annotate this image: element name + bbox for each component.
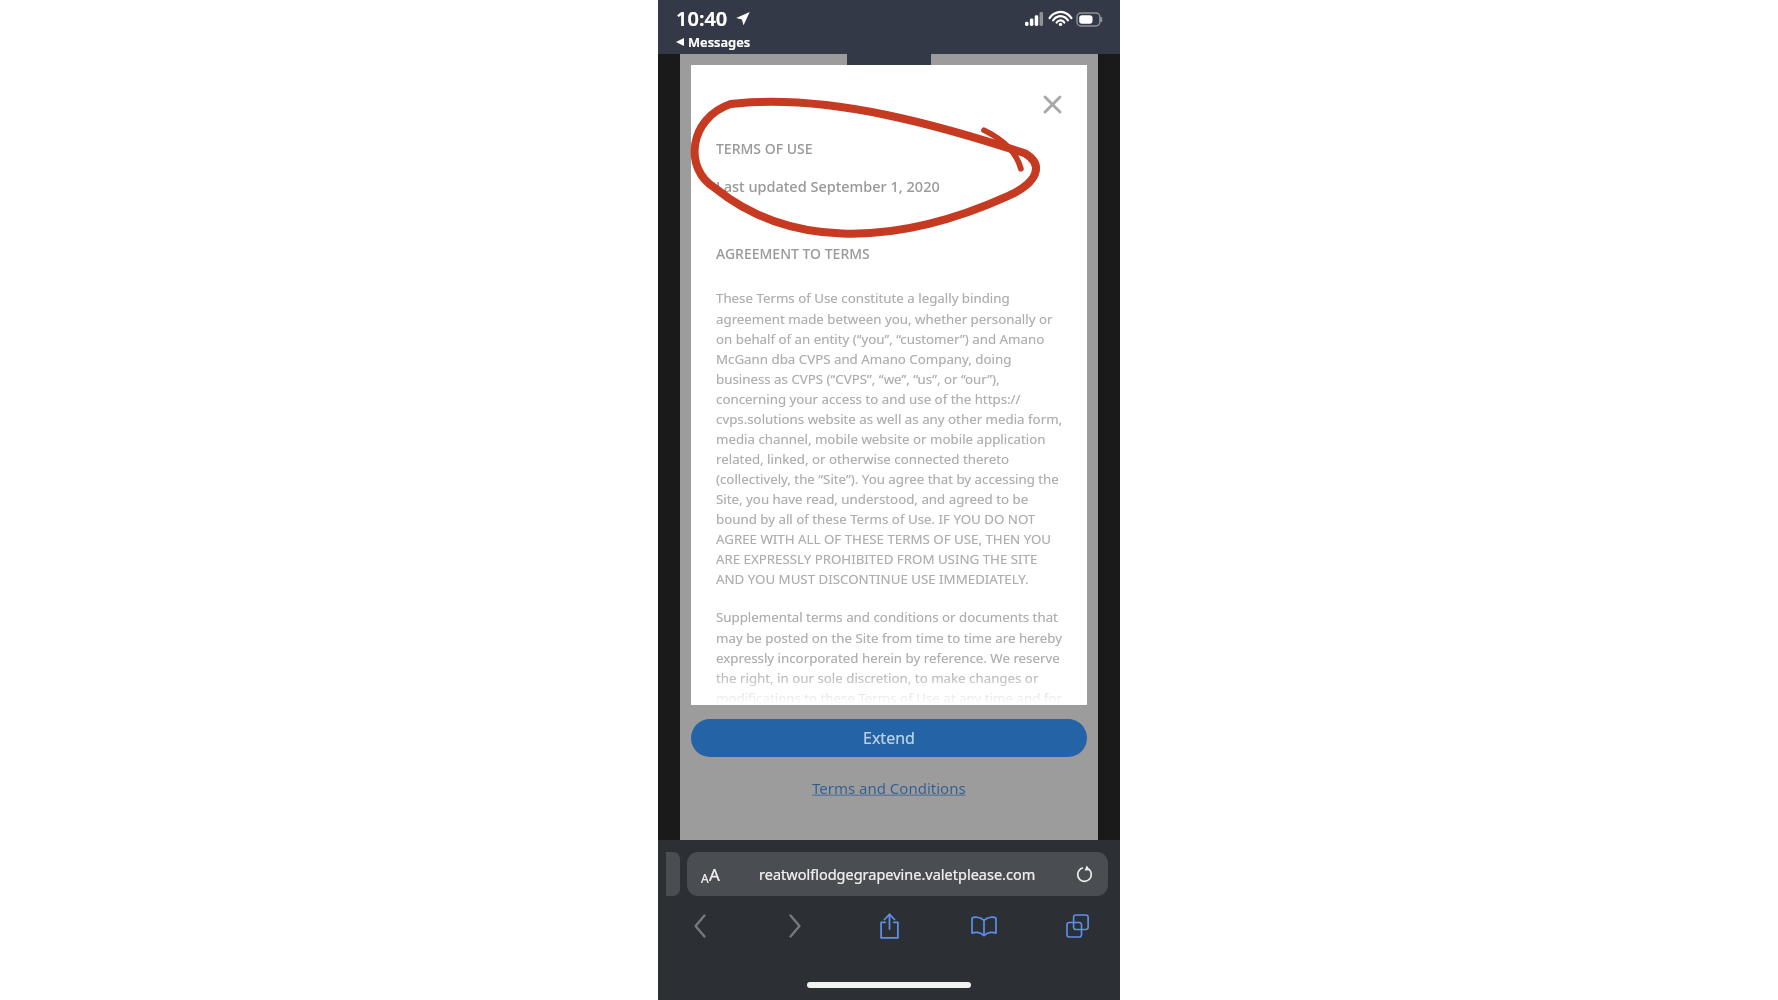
button[interactable]: Terms and Conditions [804,775,974,801]
button[interactable]: Messages [673,32,754,52]
staticText: Extend [863,727,915,749]
staticText: These Terms of Use constitute a legally … [716,289,1065,588]
staticText: AGREEMENT TO TERMS [716,244,870,263]
button[interactable]: Bookmarks [964,906,1004,946]
button[interactable]: Reload [1070,860,1098,888]
staticText: Messages [688,33,751,51]
button[interactable]: Close [1035,87,1069,121]
staticText: Supplemental terms and conditions or doc… [716,608,1065,705]
button[interactable]: Back [680,906,720,946]
staticText: A [701,870,709,886]
staticText: 10:40 [676,5,728,32]
button[interactable]: Tabs [1058,906,1098,946]
button[interactable]: Extend [691,719,1087,757]
staticText: Last updated September 1, 2020 [716,176,940,196]
staticText: A [709,863,720,886]
staticText: TERMS OF USE [716,139,813,158]
staticText: reatwolflodgegrapevine.valetplease.com [759,864,1036,884]
button[interactable]: Share [869,906,909,946]
button[interactable]: reatwolflodgegrapevine.valetplease.com [687,852,1108,896]
button[interactable]: Forward [775,906,815,946]
